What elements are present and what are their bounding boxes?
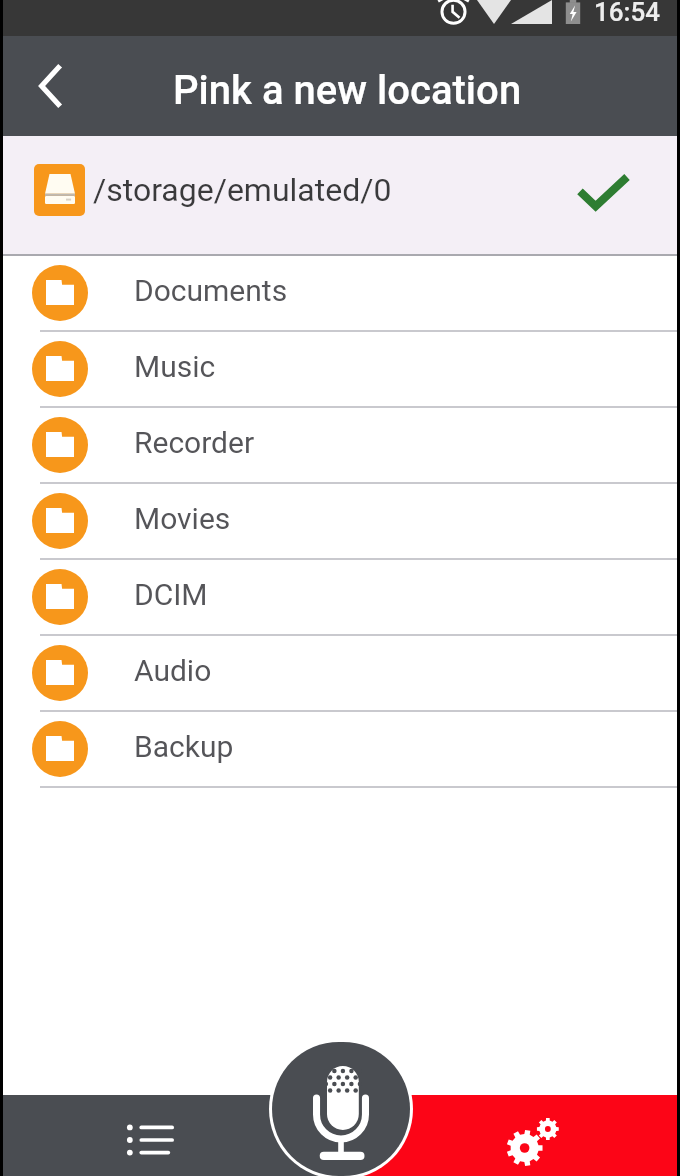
button[interactable]: Record <box>269 1039 413 1176</box>
button[interactable]: Recorder <box>3 408 677 484</box>
button[interactable]: List <box>3 1095 340 1176</box>
staticText: Movies <box>134 501 231 536</box>
button[interactable]: Back <box>20 56 80 116</box>
staticText: Pink a new location <box>173 67 522 114</box>
staticText: DCIM <box>134 577 208 612</box>
staticText: /storage/emulated/0 <box>93 171 392 209</box>
staticText: Recorder <box>134 425 255 460</box>
button[interactable]: Music <box>3 332 677 408</box>
button[interactable]: Documents <box>3 256 677 332</box>
staticText: Audio <box>134 653 212 688</box>
staticText: Music <box>134 349 216 384</box>
staticText: Documents <box>134 273 288 308</box>
staticText: Backup <box>134 729 234 764</box>
button[interactable]: Settings <box>340 1095 677 1176</box>
button[interactable]: DCIM <box>3 560 677 636</box>
staticText: 16:54 <box>594 0 661 27</box>
button[interactable]: Backup <box>3 712 677 788</box>
button[interactable]: Movies <box>3 484 677 560</box>
button[interactable]: /storage/emulated/0 <box>3 136 677 254</box>
button[interactable]: Audio <box>3 636 677 712</box>
button[interactable]: Selected <box>572 161 634 223</box>
